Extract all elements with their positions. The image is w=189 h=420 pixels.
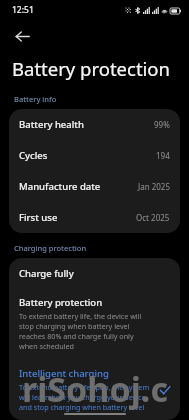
- staticText: Manufacture date: [19, 180, 138, 193]
- staticText: Charge fully: [19, 267, 74, 280]
- staticText: riSohoj.c: [22, 366, 168, 412]
- staticText: 194: [156, 150, 170, 161]
- button[interactable]: Manufacture date: [9, 171, 180, 202]
- button[interactable]: Intelligent charging: [9, 359, 180, 420]
- staticText: Cycles: [19, 149, 156, 162]
- button[interactable]: First use: [9, 202, 180, 233]
- button[interactable]: Battery health: [9, 109, 180, 140]
- button[interactable]: Cycles: [9, 140, 180, 171]
- button[interactable]: Charge fully: [9, 258, 180, 288]
- button[interactable]: Back: [6, 20, 38, 52]
- staticText: Oct 2025: [136, 212, 170, 223]
- staticText: 12:51: [12, 4, 34, 16]
- staticText: Charging protection: [14, 243, 87, 253]
- staticText: Battery health: [19, 118, 154, 131]
- button[interactable]: Battery protection: [9, 288, 180, 359]
- staticText: Battery info: [14, 94, 57, 104]
- staticText: Jan 2025: [138, 181, 170, 192]
- staticText: First use: [19, 211, 136, 224]
- staticText: Battery protection: [19, 296, 103, 309]
- staticText: Battery protection: [12, 56, 170, 81]
- staticText: To extend battery life span, the system …: [19, 382, 152, 412]
- staticText: 99%: [154, 119, 170, 130]
- staticText: Intelligent charging: [19, 367, 109, 380]
- staticText: To extend battery life, the device will …: [19, 311, 152, 351]
